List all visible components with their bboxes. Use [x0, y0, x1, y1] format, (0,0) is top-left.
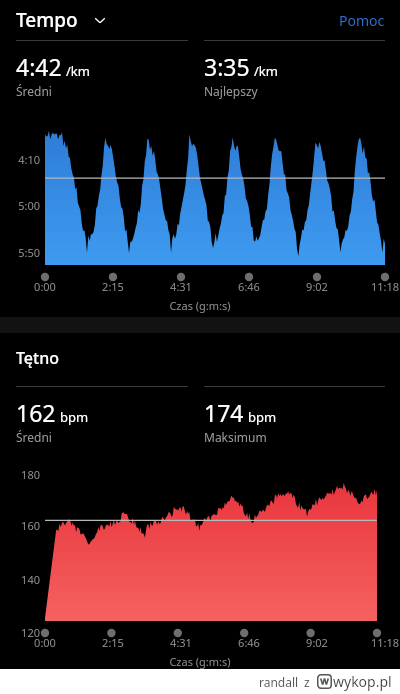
staticText: bpm: [60, 408, 89, 426]
staticText: z: [304, 674, 310, 690]
staticText: Najlepszy: [204, 83, 258, 99]
staticText: /km: [254, 62, 278, 80]
staticText: Maksimum: [204, 429, 267, 445]
button[interactable]: Pomoc: [324, 5, 400, 36]
staticText: 9:02: [300, 279, 334, 294]
staticText: 3:35: [204, 51, 250, 82]
staticText: 120: [0, 625, 40, 640]
staticText: Średni: [16, 83, 52, 99]
staticText: Średni: [16, 429, 52, 445]
staticText: 174: [204, 397, 244, 428]
staticText: 9:02: [300, 635, 334, 650]
staticText: 4:42: [16, 51, 62, 82]
staticText: 11:18: [368, 279, 400, 294]
staticText: wykop.pl: [333, 672, 392, 691]
staticText: /km: [66, 62, 90, 80]
staticText: 2:15: [96, 279, 130, 294]
staticText: 4:31: [164, 279, 198, 294]
staticText: randall: [259, 674, 299, 690]
staticText: Tętno: [16, 347, 59, 369]
staticText: 6:46: [232, 635, 266, 650]
staticText: 4:10: [0, 152, 40, 167]
staticText: Czas (g:m:s): [0, 654, 400, 669]
staticText: 0:00: [28, 635, 62, 650]
other: Rozwiń: [92, 12, 108, 28]
staticText: Pomoc: [339, 11, 385, 30]
button[interactable]: Tempo: [16, 7, 108, 33]
staticText: 180: [0, 467, 40, 482]
staticText: 5:00: [0, 198, 40, 213]
staticText: bpm: [248, 408, 277, 426]
staticText: Czas (g:m:s): [0, 298, 400, 313]
staticText: 11:18: [368, 635, 400, 650]
staticText: 162: [16, 397, 56, 428]
staticText: 0:00: [28, 279, 62, 294]
staticText: 5:50: [0, 245, 40, 260]
staticText: 140: [0, 572, 40, 587]
staticText: 2:15: [96, 635, 130, 650]
staticText: Tempo: [16, 7, 78, 33]
staticText: 6:46: [232, 279, 266, 294]
staticText: 160: [0, 518, 40, 533]
staticText: 4:31: [164, 635, 198, 650]
